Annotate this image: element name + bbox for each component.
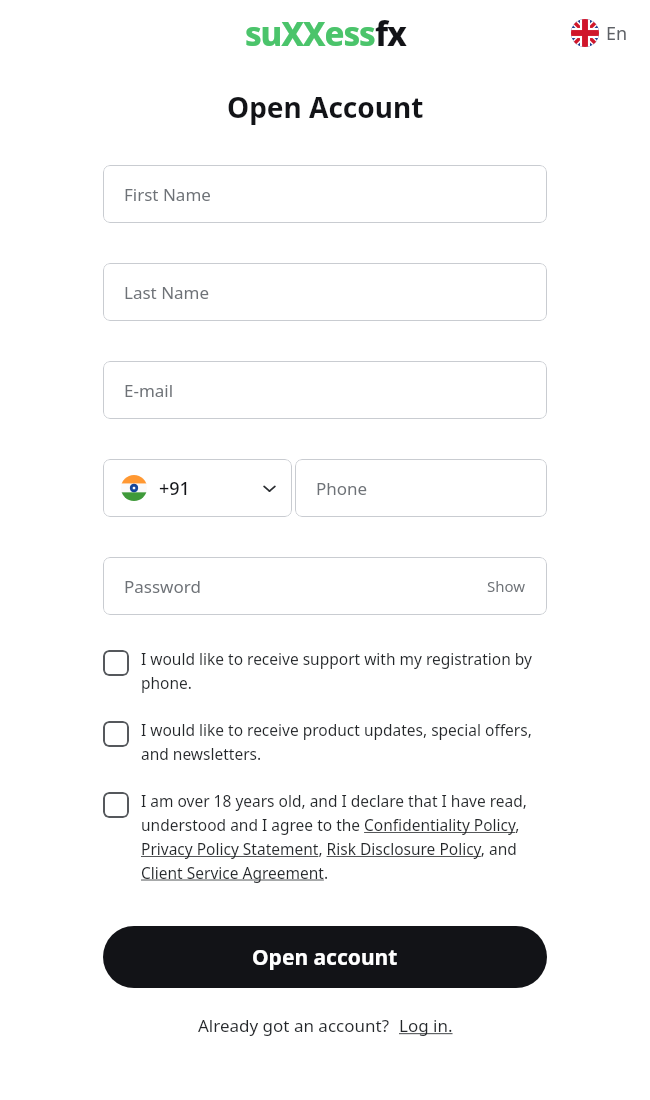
staticText: First Name <box>124 183 211 206</box>
button[interactable]: First Name <box>103 165 547 223</box>
staticText: fx <box>375 11 406 56</box>
staticText: Open Account <box>227 88 424 126</box>
staticText: I am over 18 years old, and I declare th… <box>141 790 547 883</box>
staticText: Show <box>487 576 526 596</box>
staticText: I would like to receive support with my … <box>141 648 547 693</box>
button[interactable]: Checkbox <box>103 790 547 883</box>
staticText: E-mail <box>124 379 174 402</box>
button[interactable]: Checkbox <box>103 792 129 818</box>
button[interactable]: Log in. <box>399 1014 453 1037</box>
button[interactable]: Phone <box>295 459 547 517</box>
button[interactable]: Open account <box>103 926 547 988</box>
staticText: Last Name <box>124 281 210 304</box>
staticText: En <box>606 21 628 46</box>
staticText: suXXess <box>245 11 375 56</box>
button[interactable]: E-mail <box>103 361 547 419</box>
staticText: Already got an account? <box>198 1014 390 1037</box>
staticText: +91 <box>159 476 190 501</box>
staticText: Password <box>124 575 201 598</box>
staticText: I would like to receive product updates,… <box>141 719 547 764</box>
staticText: Open account <box>252 943 398 972</box>
button[interactable]: Checkbox <box>103 648 547 693</box>
button[interactable]: Select country code <box>103 459 292 517</box>
button[interactable]: Checkbox <box>103 719 547 764</box>
button[interactable]: Change language <box>567 15 632 51</box>
staticText: Log in. <box>399 1014 453 1037</box>
button[interactable]: Checkbox <box>103 650 129 676</box>
button[interactable]: Checkbox <box>103 721 129 747</box>
button[interactable]: Last Name <box>103 263 547 321</box>
staticText: Phone <box>316 477 368 500</box>
button[interactable]: Password <box>103 557 547 615</box>
